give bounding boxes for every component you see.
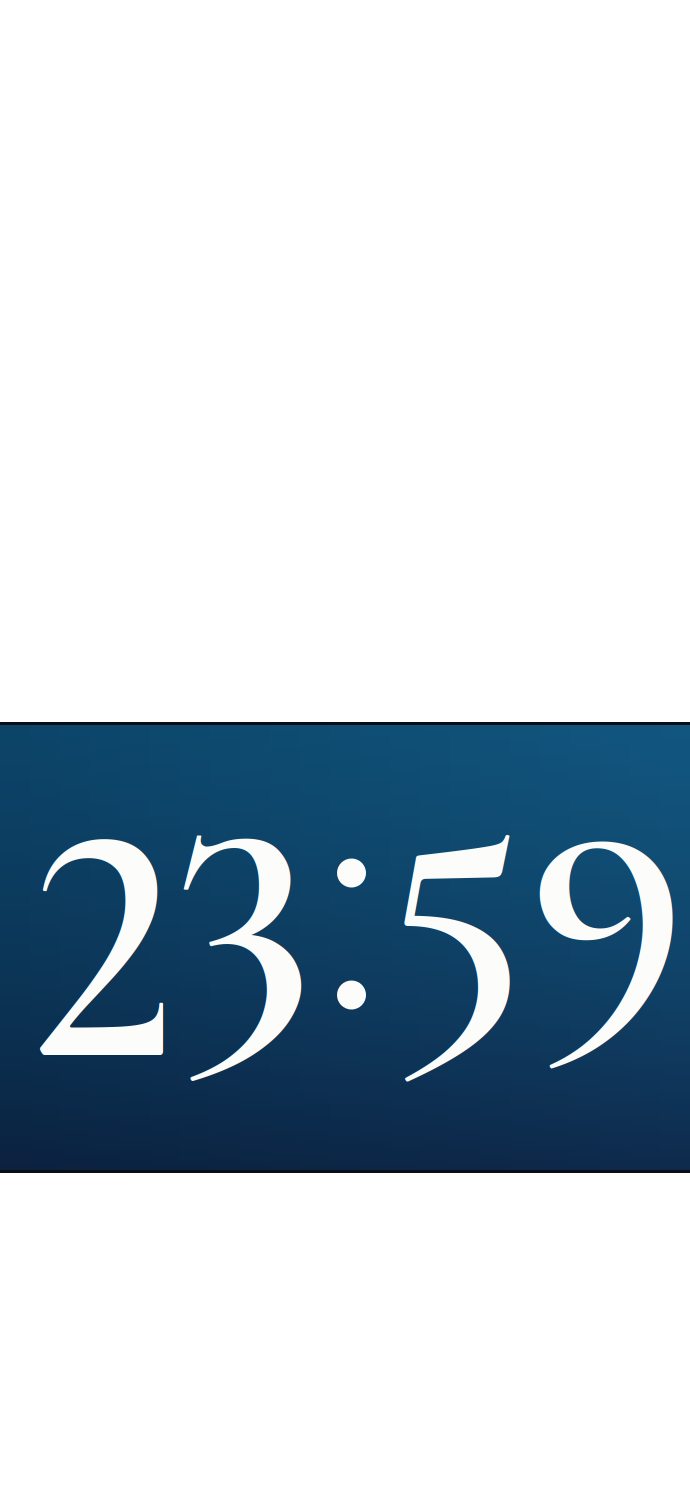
staticText: 2 bbox=[31, 741, 182, 1152]
staticText: 3 bbox=[173, 651, 313, 1085]
staticText: 5 bbox=[384, 660, 528, 1086]
staticText: 9 bbox=[530, 666, 686, 1073]
